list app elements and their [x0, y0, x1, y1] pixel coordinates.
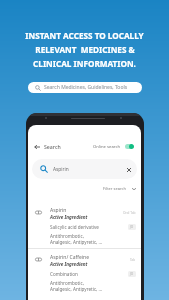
staticText: Search — [44, 143, 61, 150]
button[interactable]: Aspirin/ Caffeine — [28, 249, 141, 295]
button[interactable]: Back — [33, 143, 41, 151]
staticText: Online search — [93, 144, 121, 150]
staticText: Aspirin — [53, 166, 69, 173]
button[interactable]: Clear — [125, 166, 132, 173]
staticText: JO — [130, 272, 134, 276]
staticText: Salicylic acid derivative — [50, 224, 99, 230]
staticText: Aspirin — [50, 207, 67, 214]
staticText: Active Ingredient — [50, 214, 88, 220]
button[interactable]: Filter search — [28, 184, 136, 193]
staticText: Search Medicines, Guidelines, Tools — [44, 84, 128, 91]
button[interactable]: Aspirin — [32, 159, 137, 179]
staticText: Active Ingredient — [50, 261, 88, 267]
staticText: Oral Tab — [123, 211, 136, 215]
button[interactable]: Aspirin — [28, 202, 141, 248]
staticText: RELEVANT MEDICINES & — [35, 44, 135, 55]
staticText: Antithrombotic, Analgesic, Antipyretic, … — [50, 280, 103, 292]
staticText: Filter search — [103, 186, 126, 191]
button[interactable]: Online search toggle — [125, 144, 134, 149]
staticText: Antithrombotic, Analgesic, Antipyretic, … — [50, 233, 103, 245]
button[interactable]: Search Medicines, Guidelines, Tools — [28, 82, 142, 93]
staticText: INSTANT ACCESS TO LOCALLY — [25, 30, 144, 41]
staticText: JO — [130, 225, 134, 229]
staticText: Aspirin/ Caffeine — [50, 254, 89, 261]
staticText: CLINICAL INFORMATION. — [33, 58, 136, 69]
staticText: Combination — [50, 271, 78, 277]
staticText: Tab — [130, 258, 136, 262]
